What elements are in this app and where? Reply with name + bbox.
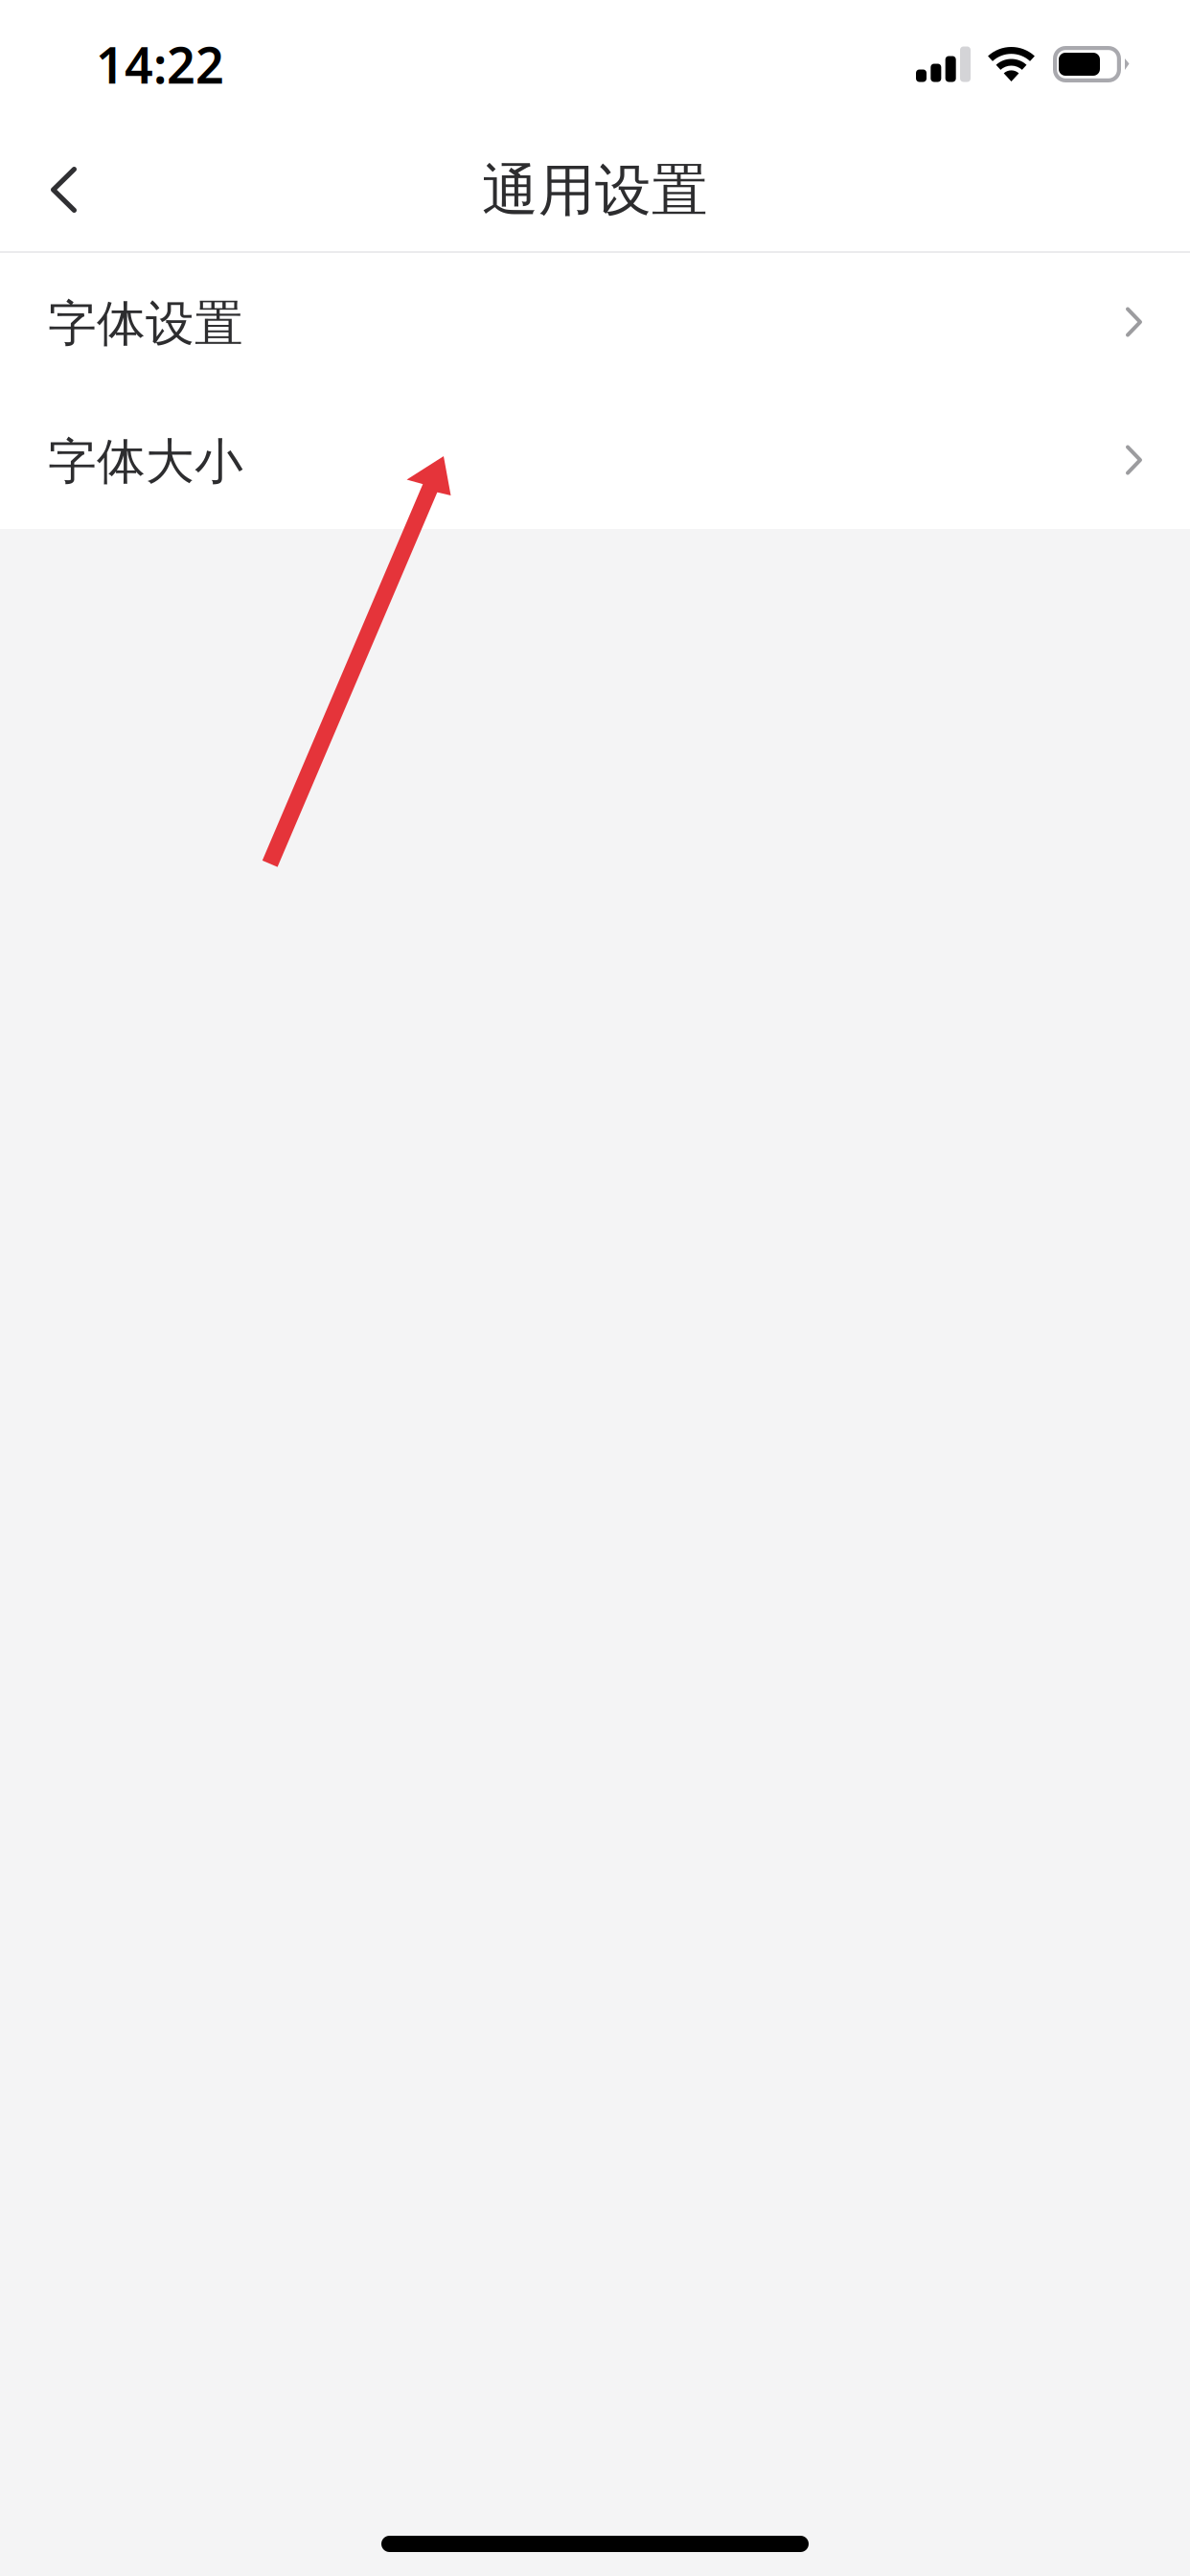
staticText: 字体设置: [48, 294, 243, 354]
button[interactable]: 字体大小: [0, 391, 1190, 529]
staticText: 通用设置: [482, 156, 708, 225]
button[interactable]: Back: [0, 128, 115, 251]
button[interactable]: 字体设置: [0, 253, 1190, 391]
staticText: 字体大小: [48, 432, 243, 492]
staticText: 14:22: [96, 31, 224, 97]
